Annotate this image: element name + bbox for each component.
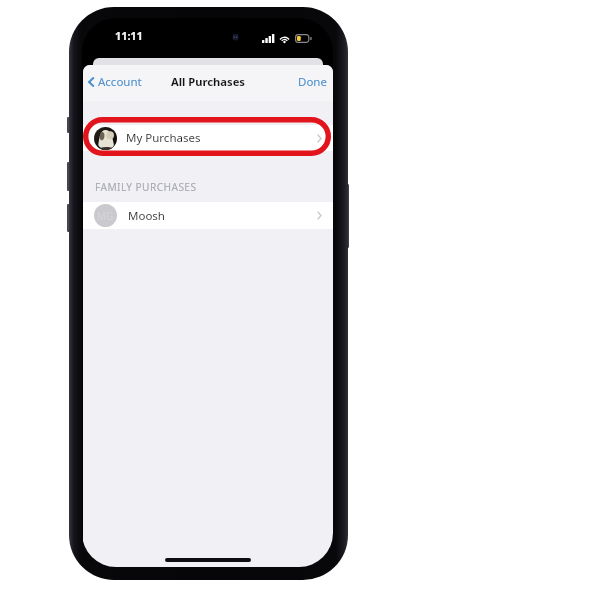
staticText: My Purchases	[126, 130, 201, 146]
staticText: 11:11	[115, 28, 143, 43]
button[interactable]: Back to Account	[83, 69, 150, 95]
staticText: All Purchases	[171, 74, 245, 89]
staticText: FAMILY PURCHASES	[95, 180, 197, 194]
staticText: MG	[97, 209, 114, 223]
staticText: Account	[98, 74, 142, 90]
staticText: Moosh	[128, 208, 165, 224]
button[interactable]: Moosh	[83, 202, 333, 229]
button[interactable]: My Purchases	[83, 125, 333, 151]
button[interactable]: Done	[288, 69, 333, 95]
staticText: Done	[298, 74, 327, 90]
